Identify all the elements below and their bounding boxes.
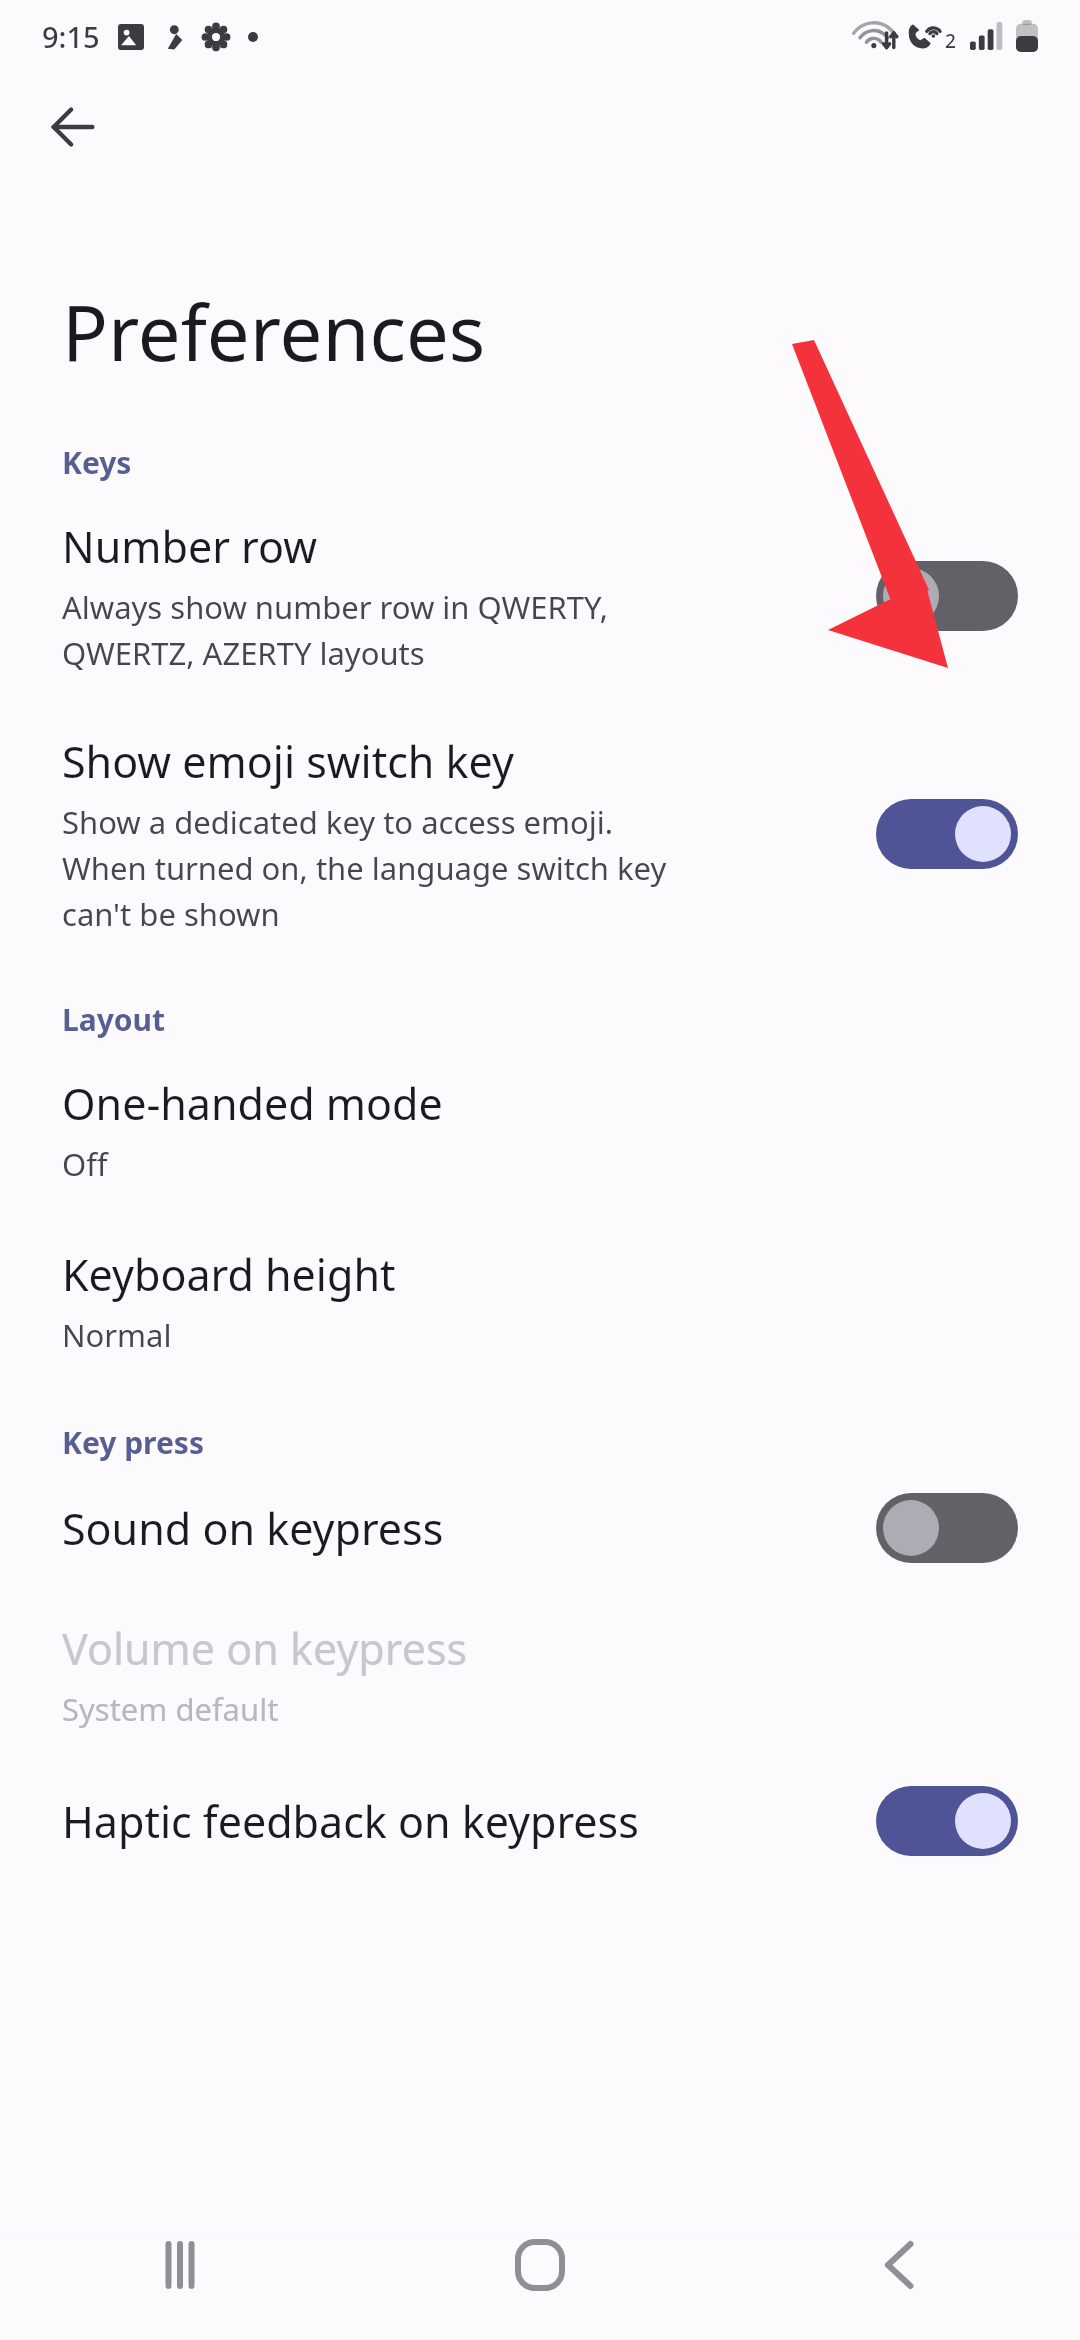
staticText: 2 [945, 28, 956, 54]
staticText: Key press [62, 1422, 204, 1463]
button[interactable]: Back [28, 82, 118, 172]
staticText: Volume on keypress [62, 1619, 468, 1678]
staticText: 9:15 [42, 17, 100, 56]
staticText: Preferences [62, 280, 486, 384]
button[interactable]: Keyboard height [0, 1245, 1080, 1356]
staticText: Show emoji switch key [62, 732, 514, 791]
button[interactable]: Toggle on [876, 799, 1018, 869]
staticText: Layout [62, 999, 166, 1040]
staticText: Show a dedicated key to access emoji. Wh… [62, 801, 822, 935]
staticText: Off [62, 1143, 842, 1185]
button[interactable]: Show emoji switch key [0, 732, 1080, 935]
button[interactable]: Number row [0, 517, 1080, 674]
button[interactable]: Toggle off [876, 561, 1018, 631]
staticText: Haptic feedback on keypress [62, 1792, 639, 1851]
staticText: Keys [62, 442, 132, 483]
button[interactable]: Recent apps [125, 2232, 235, 2340]
button[interactable]: Volume on keypress [0, 1619, 1080, 1730]
button[interactable]: One-handed mode [0, 1074, 1080, 1185]
staticText: Always show number row in QWERTY, QWERTZ… [62, 586, 762, 674]
button[interactable]: Home [485, 2232, 595, 2340]
button[interactable]: Haptic feedback on keypress [0, 1786, 1080, 1856]
staticText: Keyboard height [62, 1245, 396, 1304]
button[interactable]: Back [845, 2232, 955, 2340]
button[interactable]: Toggle off [876, 1493, 1018, 1563]
staticText: Number row [62, 517, 317, 576]
staticText: Sound on keypress [62, 1499, 444, 1558]
staticText: System default [62, 1688, 842, 1730]
staticText: Normal [62, 1314, 842, 1356]
staticText: One-handed mode [62, 1074, 443, 1133]
button[interactable]: Toggle on [876, 1786, 1018, 1856]
button[interactable]: Sound on keypress [0, 1493, 1080, 1563]
